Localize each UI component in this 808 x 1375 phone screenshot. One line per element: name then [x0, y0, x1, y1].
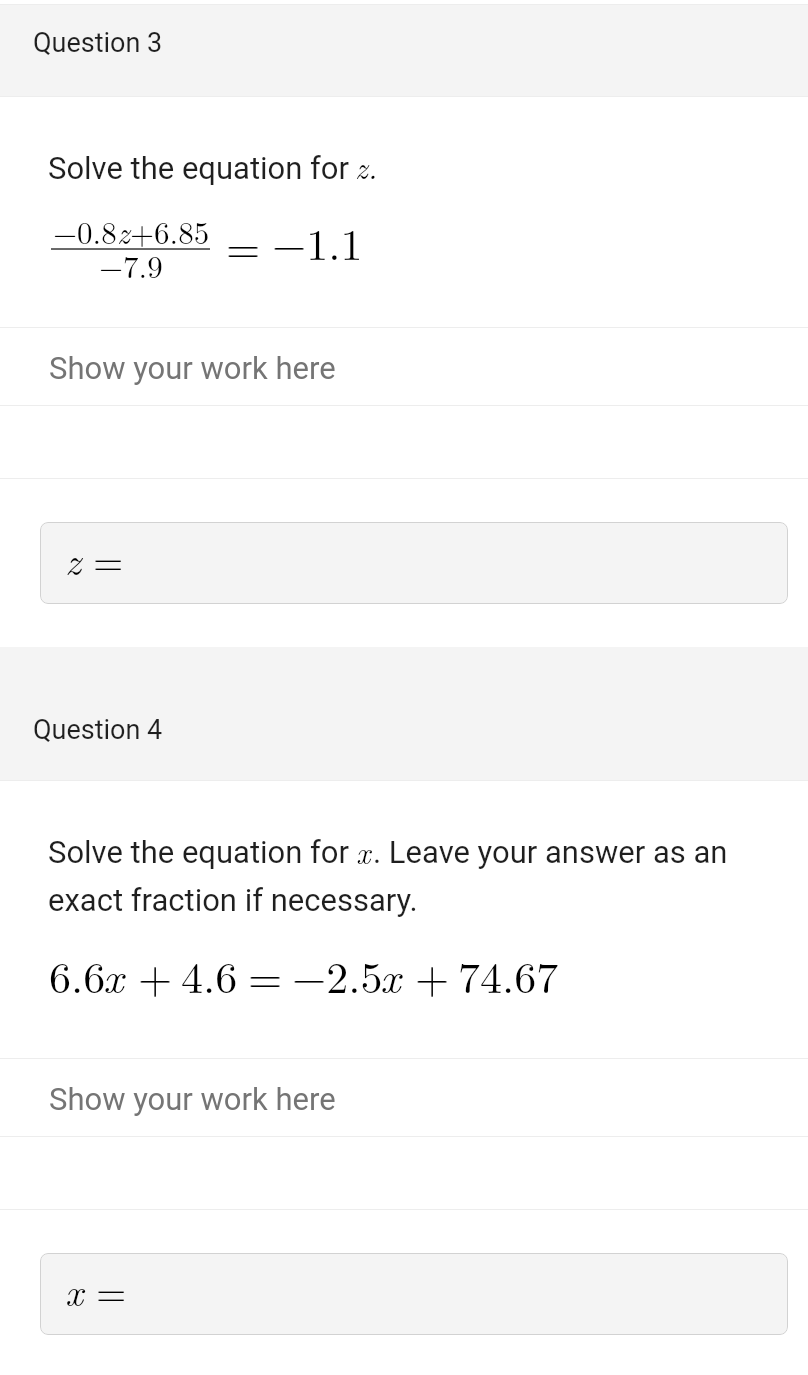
button[interactable]: Answer field for x — [40, 1253, 788, 1335]
staticText: exact fraction if necessary. — [48, 882, 418, 918]
staticText: = — [96, 1262, 127, 1317]
staticText: . Leave your answer as an — [373, 834, 728, 870]
staticText: = — [226, 213, 261, 275]
staticText: Show your work here — [49, 1081, 336, 1117]
staticText: z — [117, 209, 130, 253]
staticText: + — [138, 943, 173, 1005]
staticText: x — [65, 1262, 84, 1317]
staticText: Solve the equation for — [48, 834, 350, 870]
staticText: −0.8 — [53, 209, 117, 253]
staticText: Question 3 — [33, 27, 163, 59]
staticText: = — [248, 943, 283, 1005]
staticText: x — [103, 943, 124, 1005]
staticText: x — [356, 829, 371, 873]
button[interactable]: Question 4 — [0, 647, 808, 780]
button[interactable]: Question 3 — [0, 5, 808, 96]
staticText: 6.6 — [49, 943, 106, 1005]
staticText: −2.5 — [292, 943, 383, 1005]
staticText: z — [65, 531, 81, 586]
staticText: z. — [355, 144, 378, 188]
button[interactable]: Show your work here — [0, 328, 808, 405]
staticText: = — [93, 531, 124, 586]
staticText: Question 4 — [33, 714, 163, 746]
staticText: + — [415, 943, 450, 1005]
staticText: +6.85 — [130, 209, 210, 253]
staticText: −7.9 — [99, 243, 163, 287]
staticText: Show your work here — [49, 350, 336, 386]
button[interactable]: Show your work here — [0, 1059, 808, 1136]
staticText: 4.6 — [181, 943, 238, 1005]
staticText: Solve the equation for — [48, 150, 350, 186]
staticText: x — [380, 943, 401, 1005]
staticText: 74.67 — [458, 943, 559, 1005]
button[interactable]: Answer field for z — [40, 522, 788, 604]
staticText: −1.1 — [272, 210, 363, 272]
